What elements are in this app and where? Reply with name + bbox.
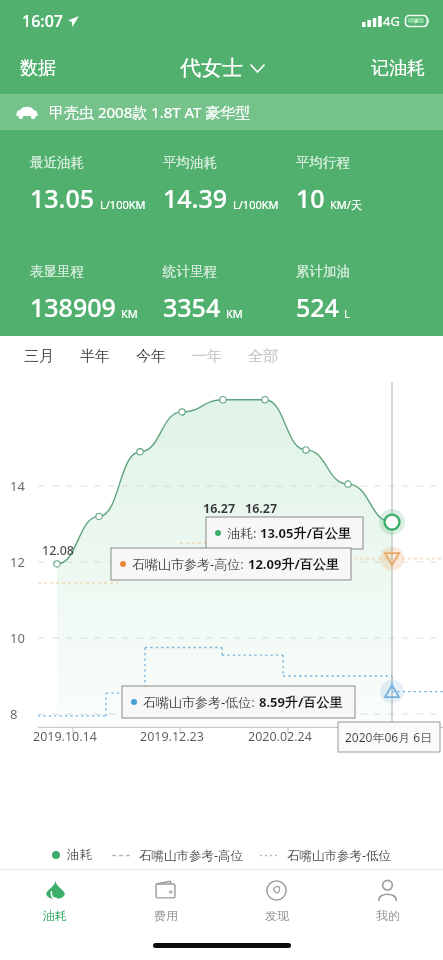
staticText: 3354 [163,290,221,324]
staticText: L/100KM [233,197,279,212]
staticText: 代女士 [180,55,243,81]
staticText: L/100KM [100,197,146,212]
button[interactable]: 甲壳虫 2008款 1.8T AT 豪华型 [0,94,443,130]
staticText: 13.05 [30,181,95,215]
button[interactable]: 一年 [188,340,244,373]
staticText: 三月 [24,347,54,366]
staticText: KM [121,306,138,321]
staticText: 我的 [376,908,400,923]
staticText: 12 [10,553,25,571]
staticText: KM/天 [330,197,362,212]
staticText: 油耗 [43,908,67,923]
button[interactable]: 今年 [132,340,188,373]
staticText: 石嘴山市参考-低位 [287,847,392,864]
button[interactable]: 全部 [244,340,300,373]
staticText: 油耗: [227,524,260,542]
staticText: 记油耗 [371,57,425,80]
staticText: 14.39 [163,181,228,215]
staticText: 12.09升/百公里 [248,555,339,573]
staticText: 平均油耗 [163,154,217,171]
button[interactable]: 三月 [20,340,76,373]
button[interactable]: 记油耗 [353,47,443,90]
staticText: 统计里程 [163,263,217,280]
staticText: 表显里程 [30,263,84,280]
staticText: 16.27 [245,500,278,517]
staticText: 16:07 [22,10,63,32]
staticText: 石嘴山市参考-高位: [132,555,248,573]
staticText: 甲壳虫 2008款 1.8T AT 豪华型 [49,102,251,122]
staticText: 10 [296,181,325,215]
staticText: 8.59升/百公里 [259,693,343,711]
staticText: 平均行程 [296,154,350,171]
staticText: L [344,306,350,321]
staticText: KM [226,306,243,321]
staticText: 10 [10,629,25,647]
staticText: 14 [10,477,25,495]
button[interactable]: 我的 [332,870,443,930]
button[interactable]: 发现 [221,870,332,930]
staticText: 524 [296,290,339,324]
staticText: 16.27 [203,500,236,517]
staticText: 累计加油 [296,263,350,280]
staticText: 138909 [30,290,116,324]
staticText: 4G [383,12,400,30]
staticText: 石嘴山市参考-高位 [139,847,244,864]
staticText: 2019.12.23 [140,728,204,745]
staticText: 一年 [192,347,222,366]
button[interactable]: 数据 [0,47,76,90]
staticText: 半年 [80,347,110,366]
button[interactable]: 半年 [76,340,132,373]
staticText: 12.08 [42,542,75,559]
staticText: 费用 [154,908,178,923]
staticText: 2020年06月 6日 [345,729,433,745]
button[interactable]: 代女士 [166,48,278,88]
button[interactable]: 油耗 [0,870,110,930]
button[interactable]: 费用 [110,870,221,930]
staticText: 今年 [136,347,166,366]
staticText: 发现 [265,908,289,923]
staticText: 13.05升/百公里 [260,524,351,542]
staticText: 石嘴山市参考-低位: [143,693,259,711]
staticText: 2020.02.24 [248,728,312,745]
staticText: 油耗 [67,847,92,863]
staticText: 8 [10,705,18,723]
staticText: 2019.10.14 [33,728,97,745]
staticText: 最近油耗 [30,154,84,171]
staticText: 数据 [20,57,56,80]
staticText: 全部 [248,347,278,366]
